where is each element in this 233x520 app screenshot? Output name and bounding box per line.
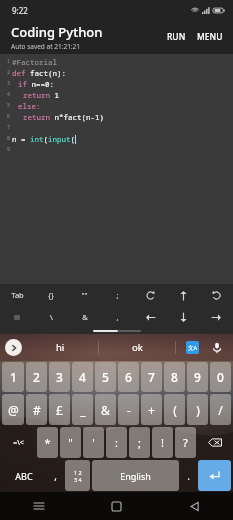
- button[interactable]: Tab: [0, 284, 34, 306]
- button[interactable]: ": [60, 427, 81, 458]
- staticText: 9:22: [12, 5, 28, 16]
- button[interactable]: English: [92, 460, 179, 491]
- staticText: 1 2: [74, 469, 82, 476]
- button[interactable]: Recent apps: [0, 492, 77, 520]
- button[interactable]: 6: [118, 362, 139, 392]
- button[interactable]: _: [72, 394, 93, 425]
- staticText: ): [196, 402, 200, 418]
- staticText: {}: [48, 290, 54, 300]
- button[interactable]: "": [68, 284, 101, 306]
- staticText: &: [101, 402, 110, 418]
- staticText: \: [50, 312, 53, 322]
- staticText: 6: [7, 113, 11, 120]
- button[interactable]: ,: [48, 460, 63, 491]
- staticText: Tab: [11, 290, 24, 300]
- button[interactable]: Move right: [200, 306, 233, 328]
- button[interactable]: ): [187, 394, 208, 425]
- staticText: n = int(input(: [12, 134, 75, 144]
- staticText: :: [115, 435, 118, 450]
- staticText: 4: [79, 369, 86, 385]
- button[interactable]: Numbers: [65, 460, 90, 491]
- staticText: return 1: [23, 90, 59, 100]
- button[interactable]: hi: [22, 334, 98, 361]
- staticText: 4: [7, 91, 11, 98]
- button[interactable]: {}: [34, 284, 68, 306]
- button[interactable]: Space: [0, 306, 34, 328]
- staticText: Coding Python: [11, 23, 103, 41]
- button[interactable]: Move down: [167, 306, 200, 328]
- button[interactable]: Undo: [134, 284, 167, 306]
- staticText: 3: [7, 80, 11, 87]
- button[interactable]: \: [34, 306, 68, 328]
- button[interactable]: ;: [101, 284, 134, 306]
- button[interactable]: 1: [2, 362, 24, 392]
- button[interactable]: 7: [141, 362, 162, 392]
- staticText: *: [44, 435, 51, 450]
- button[interactable]: :: [106, 427, 127, 458]
- staticText: 6: [125, 369, 132, 385]
- staticText: return n*fact(n-1): [23, 112, 104, 122]
- button[interactable]: Back: [155, 492, 233, 520]
- staticText: if n==0:: [18, 79, 54, 89]
- button[interactable]: Backspace: [198, 427, 231, 458]
- button[interactable]: 8: [164, 362, 185, 392]
- staticText: ,: [54, 469, 57, 483]
- button[interactable]: MENU: [193, 24, 233, 50]
- button[interactable]: #: [26, 394, 47, 425]
- staticText: =\<: [13, 438, 24, 448]
- button[interactable]: 3: [49, 362, 70, 392]
- staticText: 8: [171, 369, 178, 385]
- button[interactable]: ;: [129, 427, 150, 458]
- button[interactable]: Home: [77, 492, 155, 520]
- button[interactable]: 5: [95, 362, 116, 392]
- staticText: else:: [18, 101, 41, 111]
- button[interactable]: +: [141, 394, 162, 425]
- staticText: 3 4: [74, 476, 82, 483]
- button[interactable]: Move left: [134, 306, 167, 328]
- button[interactable]: Redo: [200, 284, 233, 306]
- staticText: 9: [7, 146, 11, 153]
- staticText: English: [120, 470, 151, 482]
- staticText: -: [127, 402, 131, 418]
- button[interactable]: ': [83, 427, 104, 458]
- button[interactable]: -: [118, 394, 139, 425]
- button[interactable]: 2: [26, 362, 47, 392]
- staticText: 7: [7, 124, 11, 131]
- staticText: 2: [33, 369, 40, 385]
- staticText: 3: [56, 369, 63, 385]
- button[interactable]: @: [2, 394, 24, 425]
- button[interactable]: ok: [99, 334, 175, 361]
- staticText: ;: [138, 435, 141, 450]
- button[interactable]: Expand toolbar: [5, 339, 22, 356]
- button[interactable]: ?: [175, 427, 196, 458]
- button[interactable]: /: [210, 394, 231, 425]
- button[interactable]: !: [152, 427, 173, 458]
- button[interactable]: (: [164, 394, 185, 425]
- button[interactable]: =\<: [2, 427, 35, 458]
- button[interactable]: 1: [0, 56, 233, 284]
- button[interactable]: 0: [210, 362, 231, 392]
- staticText: ;: [116, 290, 119, 300]
- button[interactable]: Voice input: [209, 340, 225, 356]
- button[interactable]: Enter: [198, 460, 231, 491]
- button[interactable]: Translate: [186, 341, 199, 354]
- staticText: .: [187, 469, 190, 483]
- staticText: 5: [7, 102, 11, 109]
- button[interactable]: *: [37, 427, 58, 458]
- button[interactable]: ABC: [2, 460, 46, 491]
- button[interactable]: 9: [187, 362, 208, 392]
- staticText: Auto saved at 21:21:21: [11, 42, 81, 51]
- button[interactable]: RUN: [160, 24, 193, 50]
- button[interactable]: .: [181, 460, 196, 491]
- button[interactable]: Move up: [167, 284, 200, 306]
- staticText: _: [80, 402, 86, 418]
- button[interactable]: 4: [72, 362, 93, 392]
- staticText: 1: [10, 369, 17, 385]
- button[interactable]: ,: [101, 306, 134, 328]
- staticText: #Factorial: [12, 57, 57, 67]
- staticText: £: [56, 402, 63, 418]
- button[interactable]: &: [95, 394, 116, 425]
- button[interactable]: £: [49, 394, 70, 425]
- staticText: 1: [7, 58, 11, 65]
- button[interactable]: &: [68, 306, 101, 328]
